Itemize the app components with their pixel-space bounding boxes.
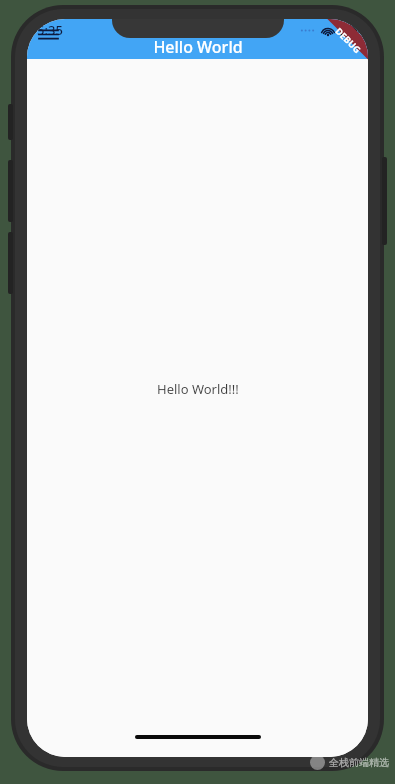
- staticText: 5:35: [37, 21, 63, 39]
- staticText: 全栈前端精选: [329, 756, 389, 769]
- button[interactable]: Open navigation drawer: [33, 19, 63, 49]
- staticText: Hello World: [153, 36, 243, 58]
- staticText: DEBUG: [333, 25, 364, 55]
- staticText: Hello World!!!: [157, 380, 239, 398]
